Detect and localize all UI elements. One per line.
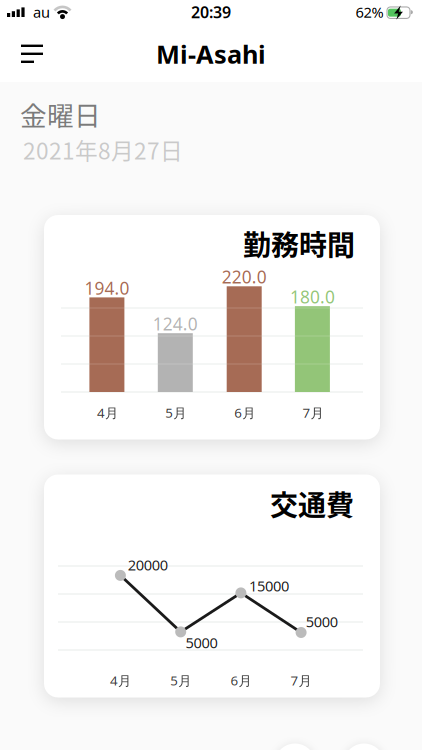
staticText: 2021年8月27日 bbox=[23, 133, 183, 166]
staticText: 62% bbox=[355, 2, 383, 22]
staticText: 5月 bbox=[165, 404, 186, 421]
staticText: 20000 bbox=[128, 555, 168, 574]
button[interactable]: Menu bbox=[17, 40, 47, 66]
staticText: 4月 bbox=[97, 404, 118, 421]
staticText: 4月 bbox=[110, 671, 131, 689]
staticText: 194.0 bbox=[84, 276, 129, 299]
staticText: 220.0 bbox=[222, 265, 267, 288]
staticText: Mi-Asahi bbox=[156, 37, 266, 71]
button[interactable]: Add record bbox=[274, 743, 315, 750]
staticText: 20:39 bbox=[191, 1, 231, 23]
staticText: 7月 bbox=[302, 404, 323, 421]
staticText: 7月 bbox=[291, 671, 312, 689]
staticText: 交通費 bbox=[270, 483, 354, 524]
staticText: 6月 bbox=[230, 671, 251, 689]
staticText: 勤務時間 bbox=[243, 223, 355, 264]
button[interactable]: Edit bbox=[343, 743, 384, 750]
staticText: au bbox=[33, 2, 50, 22]
staticText: 金曜日 bbox=[20, 95, 101, 133]
staticText: 6月 bbox=[234, 404, 255, 421]
staticText: 5000 bbox=[306, 612, 338, 631]
staticText: 5000 bbox=[186, 633, 218, 652]
staticText: 15000 bbox=[249, 576, 289, 595]
staticText: 5月 bbox=[170, 671, 191, 689]
staticText: 124.0 bbox=[153, 312, 198, 335]
staticText: 180.0 bbox=[290, 285, 335, 308]
